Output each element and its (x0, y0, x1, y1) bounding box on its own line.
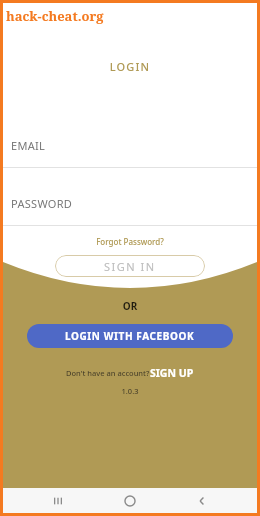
staticText: 1.0.3 (3, 386, 257, 396)
staticText: Don't have an account? (66, 368, 150, 378)
button[interactable]: LOGIN WITH FACEBOOK (27, 324, 233, 348)
staticText: SIGN UP (150, 366, 194, 380)
button[interactable]: EMAIL (3, 134, 257, 156)
button[interactable]: SIGN IN (55, 255, 205, 277)
button[interactable]: Back (185, 488, 219, 513)
button[interactable]: SIGN UP (150, 366, 194, 380)
staticText: Forgot Password? (3, 236, 257, 247)
button[interactable]: Forgot Password? (3, 236, 257, 247)
staticText: OR (3, 299, 257, 313)
staticText: SIGN IN (104, 259, 156, 274)
button[interactable]: Recent apps (41, 488, 75, 513)
staticText: LOGIN WITH FACEBOOK (65, 329, 195, 343)
staticText: LOGIN (3, 59, 257, 74)
staticText: PASSWORD (11, 196, 73, 211)
button[interactable]: Home (113, 488, 147, 513)
button[interactable]: PASSWORD (3, 192, 257, 214)
staticText: hack-cheat.org (6, 7, 104, 25)
staticText: EMAIL (11, 138, 46, 153)
